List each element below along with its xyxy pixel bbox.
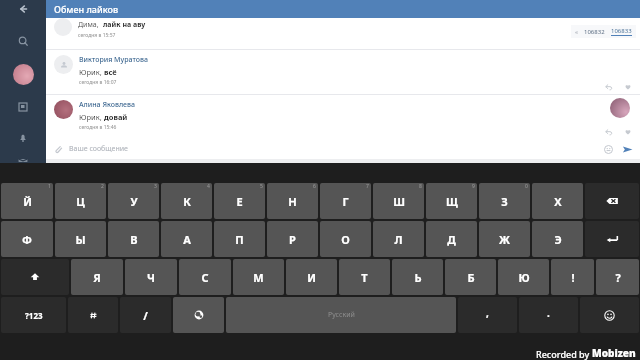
button[interactable]: А — [161, 221, 212, 257]
button[interactable]: Э — [532, 221, 583, 257]
button[interactable]: К — [161, 183, 212, 219]
button[interactable]: Д — [426, 221, 477, 257]
button[interactable]: Ф — [1, 221, 53, 257]
staticText: Э — [554, 232, 562, 247]
button[interactable]: Ь — [392, 259, 443, 295]
button[interactable]: Change language — [173, 297, 224, 333]
button[interactable]: Settings — [68, 297, 118, 333]
staticText: 7 — [366, 183, 369, 190]
button[interactable]: Обмен лайков — [46, 0, 640, 18]
button[interactable]: Т — [339, 259, 390, 295]
button[interactable]: News — [12, 96, 34, 118]
button[interactable]: Я — [71, 259, 123, 295]
button[interactable]: Search — [12, 30, 34, 52]
staticText: Ц — [76, 194, 85, 209]
staticText: 8 — [419, 183, 422, 190]
button[interactable]: Й — [1, 183, 53, 219]
staticText: Б — [467, 270, 475, 285]
button[interactable]: Reply — [605, 128, 613, 136]
button[interactable]: Reply — [605, 83, 613, 91]
button[interactable]: Ю — [498, 259, 549, 295]
staticText: Х — [554, 194, 562, 209]
button[interactable]: Е — [214, 183, 265, 219]
button[interactable]: Н — [267, 183, 318, 219]
button[interactable]: З — [479, 183, 530, 219]
staticText: 5 — [260, 183, 263, 190]
button[interactable]: О — [320, 221, 371, 257]
button[interactable]: И — [286, 259, 337, 295]
staticText: М — [253, 270, 264, 285]
button[interactable]: С — [179, 259, 231, 295]
staticText: И — [307, 270, 316, 285]
button[interactable]: Л — [373, 221, 424, 257]
button[interactable]: . — [519, 297, 578, 333]
button[interactable]: ?123 — [1, 297, 66, 333]
button[interactable]: Like — [624, 128, 632, 136]
button[interactable]: Г — [320, 183, 371, 219]
staticText: ? — [615, 270, 621, 285]
button[interactable]: Emoji — [604, 145, 613, 154]
button[interactable]: Ш — [373, 183, 424, 219]
staticText: , — [486, 306, 489, 320]
staticText: Я — [93, 270, 101, 285]
button[interactable]: Ц — [55, 183, 106, 219]
button[interactable]: Щ — [426, 183, 477, 219]
staticText: 4 — [207, 183, 210, 190]
button[interactable]: Shift — [1, 259, 69, 295]
staticText: С — [201, 270, 209, 285]
staticText: Mobizen — [592, 346, 636, 360]
button[interactable]: Ы — [55, 221, 106, 257]
button[interactable]: Виктория Муратова — [46, 50, 640, 94]
button[interactable]: Like — [624, 83, 632, 91]
button[interactable]: Attach — [46, 139, 640, 159]
button[interactable]: В — [108, 221, 159, 257]
button[interactable]: Notifications — [12, 127, 34, 149]
staticText: Ь — [414, 270, 422, 285]
button[interactable]: , — [458, 297, 517, 333]
button[interactable]: Profile — [10, 61, 36, 87]
staticText: 2 — [101, 183, 104, 190]
button[interactable]: У — [108, 183, 159, 219]
button[interactable]: Emoji — [580, 297, 639, 333]
button[interactable] — [610, 98, 630, 118]
button[interactable]: Ж — [479, 221, 530, 257]
staticText: « — [575, 28, 579, 36]
staticText: Дима, — [78, 20, 103, 30]
staticText: Ч — [147, 270, 155, 285]
button[interactable]: Send — [622, 144, 633, 155]
button[interactable]: Х — [532, 183, 583, 219]
button[interactable]: Backspace — [585, 183, 639, 219]
staticText: У — [130, 194, 138, 209]
button[interactable]: Ч — [125, 259, 177, 295]
staticText: Обмен лайков — [54, 3, 119, 15]
button[interactable]: / — [120, 297, 171, 333]
button[interactable]: ? — [596, 259, 639, 295]
staticText: П — [235, 232, 244, 247]
staticText: А — [183, 232, 191, 247]
button[interactable]: ! — [551, 259, 594, 295]
staticText: Л — [394, 232, 403, 247]
button[interactable]: Алина Яковлева — [46, 95, 640, 139]
button[interactable]: Messages — [12, 158, 34, 163]
button[interactable]: Р — [267, 221, 318, 257]
button[interactable]: Enter — [585, 221, 639, 257]
button[interactable]: Б — [445, 259, 496, 295]
button[interactable]: Attach — [53, 144, 63, 154]
staticText: сегодня в 15:57 — [78, 32, 116, 39]
staticText: О — [341, 232, 350, 247]
staticText: 0 — [525, 183, 528, 190]
staticText: Д — [447, 232, 456, 247]
staticText: Ш — [393, 194, 405, 209]
staticText: Е — [236, 194, 243, 209]
staticText: Н — [288, 194, 297, 209]
staticText: лайк на аву — [103, 20, 146, 30]
button[interactable]: Русский — [226, 297, 456, 333]
button[interactable]: Back — [0, 0, 46, 18]
button[interactable]: М — [233, 259, 284, 295]
staticText: Ж — [499, 232, 510, 247]
button[interactable]: П — [214, 221, 265, 257]
staticText: 106832 — [584, 28, 605, 36]
staticText: Т — [361, 270, 368, 285]
button[interactable]: « — [571, 25, 636, 38]
staticText: Юрик, — [79, 112, 104, 122]
